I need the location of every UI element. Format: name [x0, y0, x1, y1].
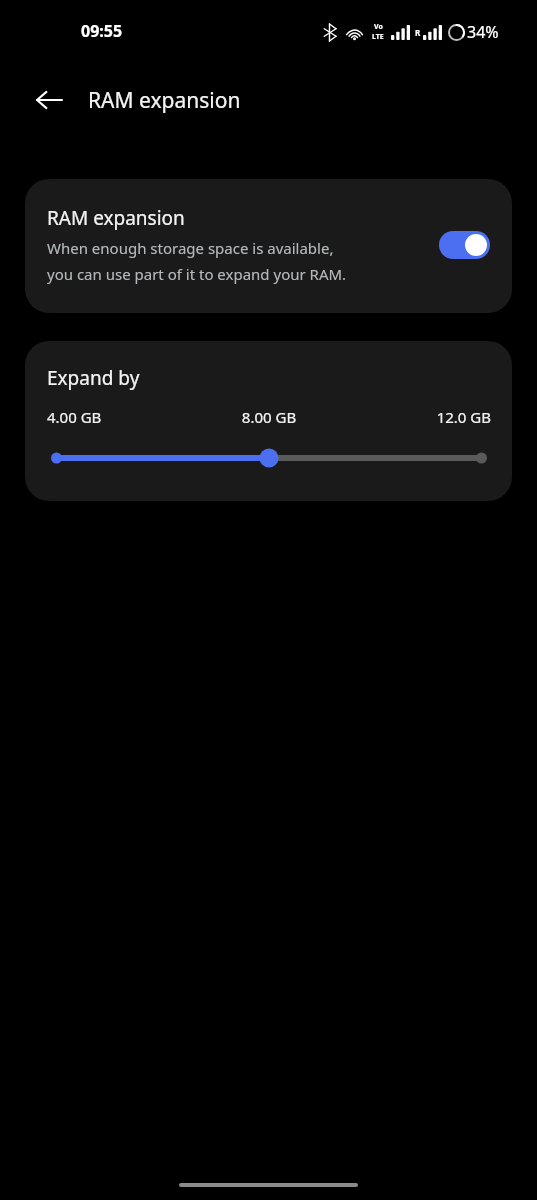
button[interactable]: Back	[24, 75, 74, 125]
staticText: 34%	[467, 21, 499, 43]
button[interactable]: RAM expansion	[25, 179, 512, 313]
button[interactable]: Expand by slider	[47, 445, 491, 471]
staticText: RAM expansion	[88, 86, 241, 115]
staticText: 8.00 GB	[195, 407, 343, 427]
staticText: 09:55	[81, 20, 123, 42]
staticText: When enough storage space is available, …	[47, 238, 347, 285]
staticText: Expand by	[47, 365, 140, 391]
staticText: Vo	[374, 22, 383, 32]
button[interactable]: RAM expansion toggle	[439, 231, 490, 259]
staticText: R	[415, 27, 421, 38]
staticText: 12.0 GB	[343, 407, 491, 427]
staticText: RAM expansion	[47, 205, 185, 231]
staticText: LTE	[372, 32, 384, 42]
staticText: 4.00 GB	[47, 407, 195, 427]
